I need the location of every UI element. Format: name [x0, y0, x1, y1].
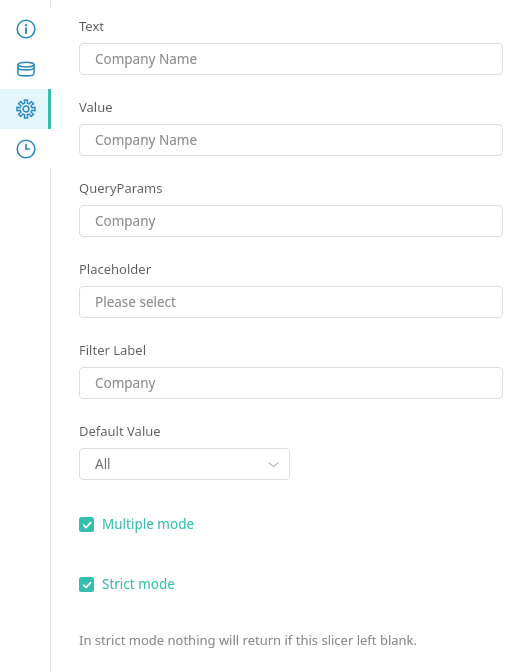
- button[interactable]: Company Name: [79, 43, 503, 75]
- button[interactable]: Please select: [79, 286, 503, 318]
- staticText: Text: [79, 17, 104, 35]
- staticText: Company Name: [95, 50, 198, 68]
- button[interactable]: All: [79, 448, 290, 480]
- staticText: In strict mode nothing will return if th…: [79, 631, 417, 649]
- staticText: Company Name: [95, 131, 198, 149]
- staticText: Please select: [95, 293, 176, 311]
- button[interactable]: Company Name: [79, 124, 503, 156]
- button[interactable]: History: [0, 129, 51, 169]
- staticText: Placeholder: [79, 260, 152, 278]
- button[interactable]: Multiple mode: [79, 515, 503, 533]
- button[interactable]: Company: [79, 367, 503, 399]
- staticText: Filter Label: [79, 341, 147, 359]
- staticText: Default Value: [79, 422, 161, 440]
- button[interactable]: Info: [0, 9, 51, 49]
- staticText: Multiple mode: [102, 515, 195, 533]
- staticText: Strict mode: [102, 575, 175, 593]
- button[interactable]: Data source: [0, 49, 51, 89]
- staticText: Company: [95, 212, 156, 230]
- staticText: Value: [79, 98, 113, 116]
- button[interactable]: Company: [79, 205, 503, 237]
- staticText: QueryParams: [79, 179, 163, 197]
- button[interactable]: Settings: [0, 89, 51, 129]
- button[interactable]: Strict mode: [79, 575, 503, 593]
- staticText: Company: [95, 374, 156, 392]
- staticText: All: [95, 455, 111, 473]
